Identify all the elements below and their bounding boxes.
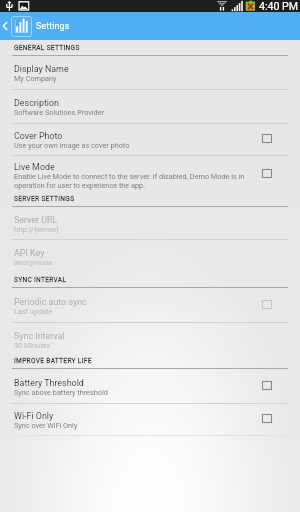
button[interactable]: Navigate up, Settings bbox=[0, 12, 300, 40]
button[interactable]: Server URL bbox=[0, 207, 300, 240]
staticText: Enable Live Mode to connect to the serve… bbox=[14, 172, 248, 190]
staticText: 4:40 PM bbox=[259, 0, 298, 12]
button[interactable]: Wi-Fi Only bbox=[0, 404, 300, 436]
staticText: My Company bbox=[14, 74, 57, 83]
staticText: SERVER SETTINGS bbox=[14, 195, 75, 203]
staticText: Live Mode bbox=[14, 162, 55, 172]
button[interactable]: Periodic auto sync bbox=[0, 288, 300, 323]
button[interactable]: Display Name bbox=[0, 56, 300, 90]
staticText: Sync Interval bbox=[14, 331, 65, 341]
button[interactable]: Sync Interval bbox=[0, 323, 300, 357]
button[interactable]: Live Mode bbox=[0, 156, 300, 194]
staticText: Cover Photo bbox=[14, 131, 63, 141]
button[interactable]: Battery Threshold bbox=[0, 369, 300, 404]
staticText: Use your own image as cover photo bbox=[14, 141, 130, 150]
staticText: Periodic auto sync bbox=[14, 297, 87, 307]
staticText: Sync over WiFi Only bbox=[14, 421, 78, 430]
staticText: Display Name bbox=[14, 64, 69, 74]
staticText: anonymous bbox=[14, 258, 52, 267]
staticText: GENERAL SETTINGS bbox=[14, 44, 80, 52]
staticText: Description bbox=[14, 98, 60, 108]
button[interactable]: Cover Photo bbox=[0, 124, 300, 156]
staticText: Sync above battery threshold bbox=[14, 388, 108, 397]
staticText: SYNC INTERVAL bbox=[14, 276, 67, 284]
staticText: Settings bbox=[36, 21, 70, 31]
staticText: http://{server} bbox=[14, 225, 59, 234]
staticText: Software Solutions Provider bbox=[14, 108, 105, 117]
staticText: Battery Threshold bbox=[14, 378, 84, 388]
staticText: API Key bbox=[14, 248, 45, 258]
staticText: Last update bbox=[14, 307, 53, 316]
staticText: Server URL bbox=[14, 215, 58, 225]
staticText: Wi-Fi Only bbox=[14, 411, 54, 421]
staticText: 30 Minutes bbox=[14, 341, 51, 350]
button[interactable]: Description bbox=[0, 90, 300, 124]
button[interactable]: API Key bbox=[0, 240, 300, 273]
staticText: IMPROVE BATTERY LIFE bbox=[14, 357, 92, 365]
